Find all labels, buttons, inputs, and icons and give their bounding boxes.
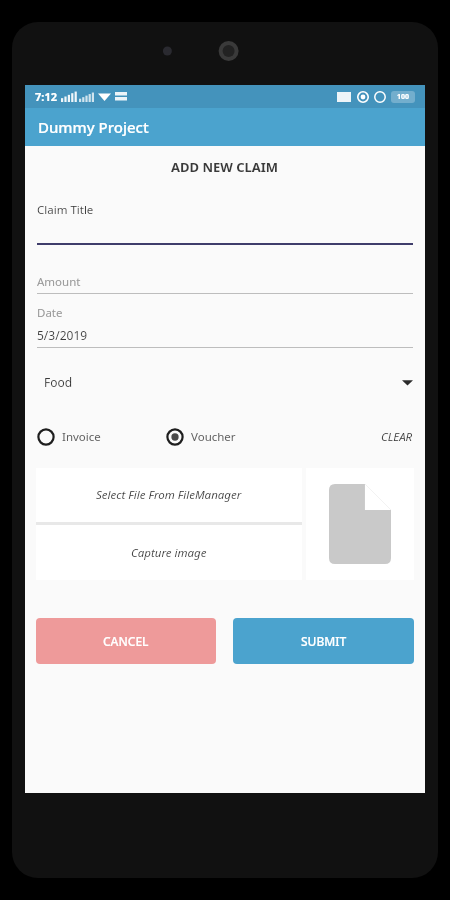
staticText: CANCEL <box>103 633 149 649</box>
staticText: Date <box>37 305 63 321</box>
staticText: Amount <box>37 274 81 290</box>
staticText: SUBMIT <box>301 633 347 649</box>
button[interactable]: CLEAR <box>296 424 413 450</box>
button[interactable]: Select File From FileManager <box>36 468 302 522</box>
staticText: Food <box>44 374 73 390</box>
staticText: Invoice <box>62 429 101 445</box>
staticText: 7:12 <box>35 89 57 104</box>
button[interactable]: SUBMIT <box>233 618 414 664</box>
button[interactable]: Dummy Project <box>25 108 425 146</box>
staticText: Claim Title <box>37 202 94 218</box>
staticText: Select File From FileManager <box>96 487 242 503</box>
staticText: CLEAR <box>381 429 413 445</box>
button[interactable]: Attached document preview <box>306 468 414 580</box>
button[interactable]: CANCEL <box>36 618 216 664</box>
staticText: 5/3/2019 <box>37 327 88 343</box>
button[interactable]: Food <box>37 370 413 394</box>
staticText: Capture image <box>131 545 207 561</box>
staticText: 100 <box>397 92 410 102</box>
other: Expand category <box>402 377 413 388</box>
staticText: Voucher <box>191 429 236 445</box>
button[interactable]: Invoice <box>37 424 166 450</box>
staticText: ADD NEW CLAIM <box>171 158 279 176</box>
staticText: Dummy Project <box>38 117 149 137</box>
button[interactable]: Capture image <box>36 525 302 580</box>
button[interactable]: Voucher <box>166 424 296 450</box>
